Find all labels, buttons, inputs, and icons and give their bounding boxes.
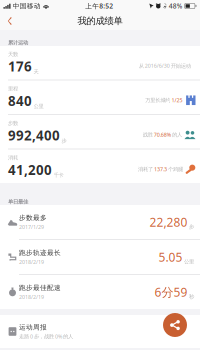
staticText: 41,200 (8, 161, 52, 179)
staticText: 里程 (8, 85, 18, 92)
staticText: 个鸡腿 (168, 166, 183, 173)
staticText: 步数最多 (19, 214, 47, 222)
staticText: 992,400 (8, 126, 60, 144)
staticText: 2018/2/19 (19, 293, 44, 300)
staticText: 的人 (172, 131, 182, 138)
staticText: 千卡 (53, 172, 63, 179)
staticText: 22,280 (149, 214, 187, 230)
staticText: 步数 (8, 120, 18, 126)
staticText: 2018/2/19 (19, 258, 44, 265)
staticText: 70.68% (154, 131, 171, 138)
staticText: 跑步轨迹最长 (19, 249, 61, 257)
button[interactable]: Share (163, 313, 187, 337)
staticText: 从 2016/6/30 开始运动 (139, 62, 191, 69)
staticText: 跑步最佳配速 (19, 284, 61, 292)
staticText: 走路 0 步，战胜 0% 的人 (19, 333, 73, 340)
staticText: 天数 (8, 51, 18, 57)
staticText: 战胜 (143, 131, 153, 138)
button[interactable]: 消耗 (0, 149, 200, 183)
staticText: 2017/1/29 (19, 223, 44, 230)
staticText: 消耗 (8, 154, 18, 161)
staticText: 840 (8, 92, 32, 110)
staticText: 步 (189, 223, 194, 230)
staticText: 5.05 (158, 249, 182, 265)
staticText: 137.3 (154, 166, 167, 173)
staticText: 我的成绩单 (77, 15, 122, 27)
button[interactable]: 运动周报 (0, 315, 200, 348)
button[interactable]: 天数 (0, 46, 200, 79)
staticText: 公里 (184, 258, 194, 265)
staticText: 秒 (189, 293, 194, 300)
staticText: 176 (8, 57, 32, 75)
staticText: 万里长城约 (145, 97, 170, 104)
staticText: 天 (33, 69, 38, 75)
staticText: 6分59 (154, 284, 187, 300)
staticText: 消耗了 (138, 166, 153, 173)
button[interactable]: 里程 (0, 80, 200, 114)
button[interactable]: Back (3, 12, 17, 30)
button[interactable]: 步数 (0, 115, 200, 148)
staticText: 公里 (33, 103, 43, 110)
staticText: 步 (61, 138, 66, 144)
staticText: 累计运动 (8, 39, 28, 46)
staticText: 48% (167, 2, 185, 10)
button[interactable]: 跑步轨迹最长 (0, 240, 200, 274)
staticText: 运动周报 (19, 323, 47, 331)
button[interactable]: 步数最多 (0, 205, 200, 239)
staticText: 单日最佳 (8, 198, 28, 205)
staticText: 中国移动 (11, 2, 43, 10)
staticText: 上午8:52 (85, 2, 113, 10)
button[interactable]: 跑步最佳配速 (0, 275, 200, 309)
staticText: 1/25 (171, 97, 182, 104)
